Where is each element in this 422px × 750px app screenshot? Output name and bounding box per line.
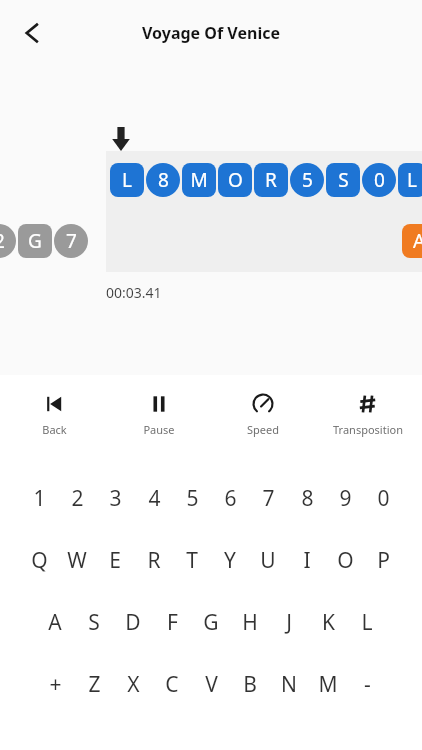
staticText: J bbox=[286, 608, 292, 637]
staticText: M bbox=[318, 670, 338, 699]
button[interactable]: K bbox=[309, 591, 347, 653]
staticText: O bbox=[337, 546, 354, 575]
button[interactable]: L bbox=[398, 163, 422, 197]
staticText: G bbox=[203, 608, 219, 637]
button[interactable]: W bbox=[58, 529, 96, 591]
staticText: A bbox=[413, 228, 422, 254]
staticText: X bbox=[127, 670, 140, 699]
staticText: - bbox=[364, 670, 371, 699]
button[interactable]: A bbox=[402, 224, 422, 258]
button[interactable]: V bbox=[192, 653, 230, 715]
button[interactable]: Back bbox=[4, 388, 104, 441]
staticText: U bbox=[260, 546, 276, 575]
button[interactable]: P bbox=[364, 529, 402, 591]
staticText: T bbox=[186, 546, 198, 575]
button[interactable]: 1 bbox=[20, 467, 58, 529]
button[interactable]: 8 bbox=[288, 467, 326, 529]
staticText: + bbox=[49, 670, 62, 699]
staticText: S bbox=[338, 167, 349, 193]
staticText: Voyage Of Venice bbox=[142, 22, 280, 44]
staticText: 6 bbox=[224, 484, 237, 513]
button[interactable]: N bbox=[270, 653, 308, 715]
staticText: N bbox=[281, 670, 297, 699]
button[interactable]: B bbox=[231, 653, 269, 715]
button[interactable]: H bbox=[231, 591, 269, 653]
button[interactable]: G bbox=[192, 591, 230, 653]
staticText: 5 bbox=[186, 484, 199, 513]
button[interactable]: 5 bbox=[290, 163, 324, 197]
button[interactable]: D bbox=[114, 591, 152, 653]
button[interactable]: 4 bbox=[135, 467, 173, 529]
staticText: C bbox=[165, 670, 179, 699]
button[interactable]: 2 bbox=[58, 467, 96, 529]
button[interactable]: Back bbox=[8, 9, 56, 57]
button[interactable]: 6 bbox=[211, 467, 249, 529]
button[interactable]: 0 bbox=[362, 163, 396, 197]
button[interactable]: G bbox=[18, 224, 52, 258]
button[interactable]: 8 bbox=[146, 163, 180, 197]
button[interactable]: 9 bbox=[326, 467, 364, 529]
staticText: M bbox=[190, 167, 208, 193]
button[interactable]: L bbox=[110, 163, 144, 197]
staticText: Transposition bbox=[333, 422, 403, 437]
staticText: L bbox=[407, 167, 417, 193]
staticText: 8 bbox=[158, 167, 169, 193]
button[interactable]: Pause bbox=[109, 388, 209, 441]
button[interactable]: 5 bbox=[173, 467, 211, 529]
button[interactable]: L bbox=[348, 591, 386, 653]
staticText: W bbox=[67, 546, 87, 575]
button[interactable]: S bbox=[75, 591, 113, 653]
staticText: R bbox=[265, 167, 277, 193]
button[interactable]: R bbox=[254, 163, 288, 197]
button[interactable]: 7 bbox=[249, 467, 287, 529]
staticText: L bbox=[122, 167, 132, 193]
staticText: 2 bbox=[71, 484, 84, 513]
staticText: 5 bbox=[302, 167, 313, 193]
button[interactable]: U bbox=[249, 529, 287, 591]
button[interactable]: O bbox=[218, 163, 252, 197]
staticText: 8 bbox=[301, 484, 314, 513]
button[interactable]: A bbox=[36, 591, 74, 653]
button[interactable]: M bbox=[309, 653, 347, 715]
staticText: P bbox=[377, 546, 390, 575]
button[interactable]: S bbox=[326, 163, 360, 197]
button[interactable]: I bbox=[288, 529, 326, 591]
button[interactable]: Transposition bbox=[318, 388, 418, 441]
button[interactable]: T bbox=[173, 529, 211, 591]
staticText: 7 bbox=[66, 228, 77, 254]
button[interactable]: F bbox=[153, 591, 191, 653]
button[interactable]: Y bbox=[211, 529, 249, 591]
staticText: K bbox=[322, 608, 335, 637]
button[interactable]: X bbox=[114, 653, 152, 715]
staticText: 0 bbox=[377, 484, 390, 513]
button[interactable]: C bbox=[153, 653, 191, 715]
staticText: 9 bbox=[339, 484, 352, 513]
button[interactable]: + bbox=[36, 653, 74, 715]
button[interactable]: E bbox=[96, 529, 134, 591]
staticText: L bbox=[361, 608, 373, 637]
button[interactable]: 3 bbox=[96, 467, 134, 529]
staticText: F bbox=[167, 608, 178, 637]
button[interactable]: - bbox=[348, 653, 386, 715]
button[interactable]: M bbox=[182, 163, 216, 197]
staticText: 3 bbox=[109, 484, 122, 513]
button[interactable]: 7 bbox=[54, 224, 88, 258]
button[interactable]: J bbox=[270, 591, 308, 653]
staticText: 0 bbox=[374, 167, 385, 193]
staticText: H bbox=[242, 608, 258, 637]
staticText: Y bbox=[224, 546, 236, 575]
button[interactable]: Z bbox=[75, 653, 113, 715]
button[interactable]: R bbox=[135, 529, 173, 591]
staticText: A bbox=[48, 608, 62, 637]
button[interactable]: Speed bbox=[213, 388, 313, 441]
button[interactable]: 2 bbox=[0, 224, 16, 258]
button[interactable]: 0 bbox=[364, 467, 402, 529]
button[interactable]: O bbox=[326, 529, 364, 591]
button[interactable]: Q bbox=[20, 529, 58, 591]
staticText: 00:03.41 bbox=[106, 283, 162, 302]
staticText: E bbox=[109, 546, 121, 575]
staticText: Q bbox=[31, 546, 48, 575]
staticText: 2 bbox=[0, 228, 5, 254]
staticText: V bbox=[205, 670, 218, 699]
staticText: R bbox=[147, 546, 161, 575]
